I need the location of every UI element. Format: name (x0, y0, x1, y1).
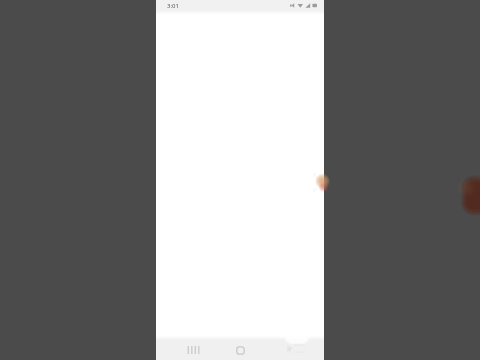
button[interactable]: Home (231, 340, 249, 360)
staticText: 3:01 (167, 2, 179, 10)
button[interactable]: Recents (184, 340, 202, 360)
button[interactable]: Back (281, 340, 299, 360)
